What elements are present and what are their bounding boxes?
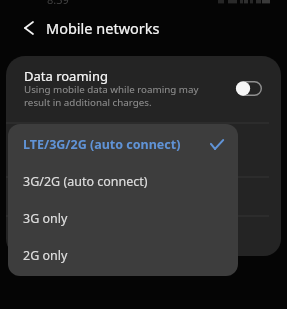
button[interactable]: 2G only <box>8 237 238 274</box>
staticText: 3G/2G (auto connect) <box>23 173 148 190</box>
staticText: Data roaming <box>24 67 108 85</box>
staticText: Mobile networks <box>46 18 160 38</box>
staticText: 2G only <box>23 247 68 264</box>
button[interactable]: Back <box>11 10 47 46</box>
button[interactable]: Data roaming <box>6 56 281 114</box>
staticText: 8:39 <box>47 0 69 7</box>
staticText: LTE/3G/2G (auto connect) <box>23 136 181 153</box>
button[interactable]: 3G only <box>8 200 238 237</box>
button[interactable]: LTE/3G/2G (auto connect) <box>8 126 238 163</box>
staticText: 3G only <box>23 210 68 227</box>
staticText: Using mobile data while roaming may resu… <box>24 83 199 108</box>
button[interactable]: 3G/2G (auto connect) <box>8 163 238 200</box>
button[interactable]: Data roaming toggle, off <box>236 81 262 96</box>
